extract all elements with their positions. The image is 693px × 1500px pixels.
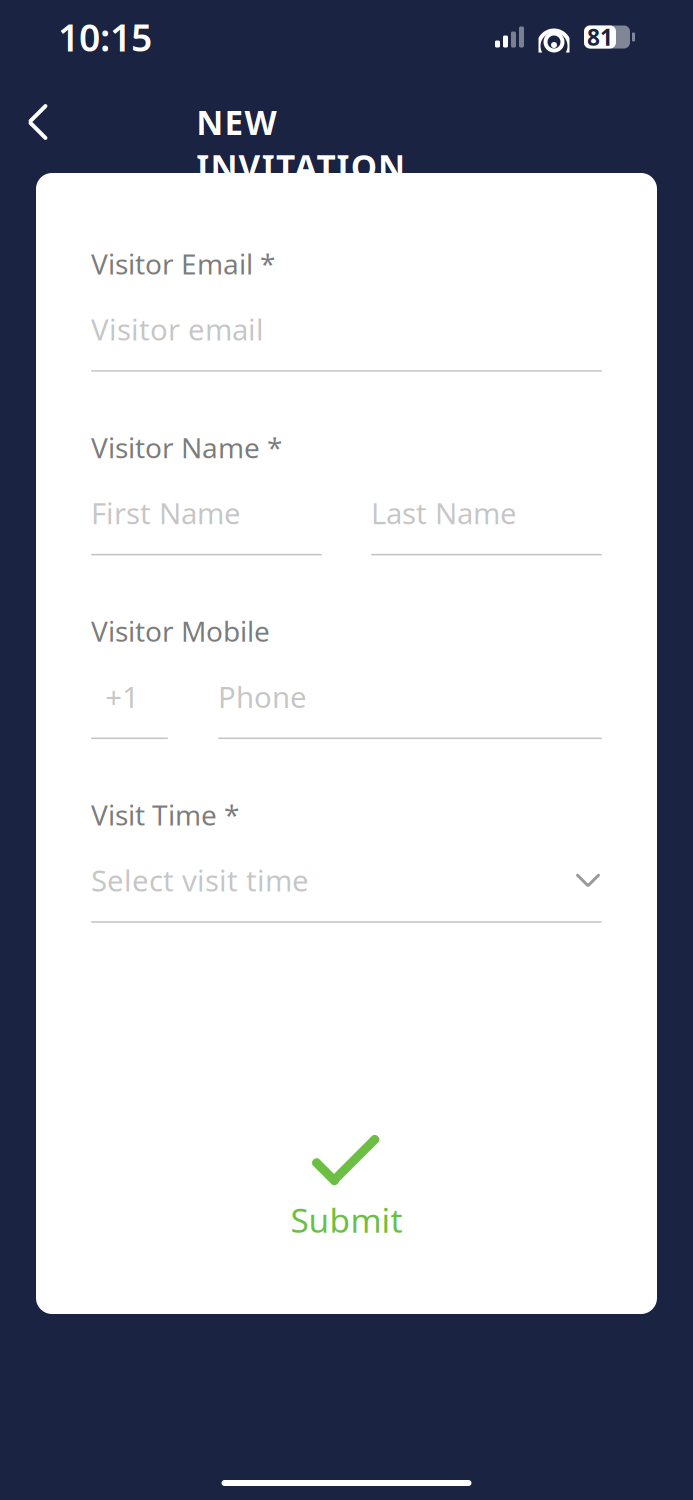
staticText: First Name xyxy=(91,493,241,532)
staticText: NEW INVITATION xyxy=(196,100,497,144)
staticText: 81 xyxy=(587,22,613,52)
staticText: Last Name xyxy=(371,493,517,532)
staticText: +1 xyxy=(105,677,139,716)
staticText: Visitor Email * xyxy=(91,245,275,282)
staticText: Select visit time xyxy=(91,861,309,900)
staticText: Visitor Mobile xyxy=(91,612,270,650)
staticText: 10:15 xyxy=(58,12,152,62)
button[interactable]: Select visit time xyxy=(91,865,602,923)
staticText: Visit Time * xyxy=(91,796,239,833)
staticText: Visitor Name * xyxy=(91,429,282,466)
button[interactable]: Back xyxy=(10,94,66,150)
staticText: Phone xyxy=(218,677,307,716)
staticText: Submit xyxy=(290,1198,402,1242)
staticText: Visitor email xyxy=(91,310,264,349)
button[interactable]: Submit xyxy=(254,1126,438,1252)
